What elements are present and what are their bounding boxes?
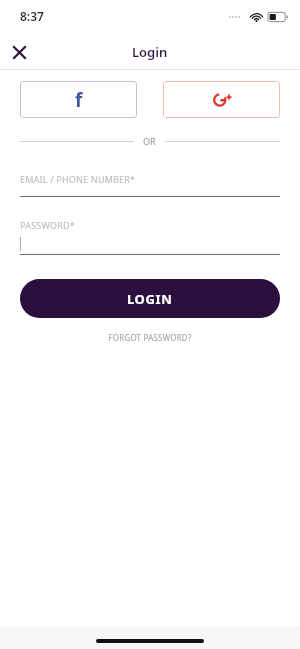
staticText: 8:37 [20, 8, 44, 24]
button[interactable]: EMAIL / PHONE NUMBER* [20, 173, 280, 197]
button[interactable]: LOGIN [20, 279, 280, 318]
staticText: f [75, 87, 83, 113]
button[interactable]: Sign in with Google Plus [163, 81, 280, 118]
staticText: OR [143, 135, 156, 147]
button[interactable]: Close [0, 34, 38, 70]
button[interactable]: PASSWORD* [20, 219, 280, 255]
staticText: EMAIL / PHONE NUMBER* [20, 173, 136, 185]
staticText: LOGIN [127, 290, 173, 308]
staticText: PASSWORD* [20, 219, 75, 231]
staticText: Login [132, 43, 168, 61]
button[interactable]: FORGOT PASSWORD? [98, 329, 202, 346]
button[interactable]: Sign in with Facebook [20, 81, 137, 118]
staticText: FORGOT PASSWORD? [108, 332, 192, 343]
